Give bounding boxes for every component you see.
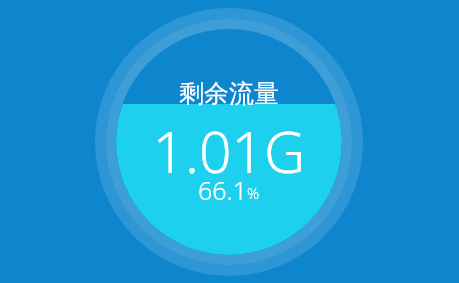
- button[interactable]: Remaining data 1.01G, 66.1 percent: [0, 0, 459, 283]
